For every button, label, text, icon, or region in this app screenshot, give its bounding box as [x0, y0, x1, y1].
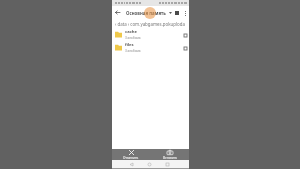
button[interactable]: Grid view [172, 8, 182, 18]
button[interactable]: cache [112, 28, 189, 41]
button[interactable]: Отменить [112, 149, 150, 160]
button[interactable]: Вставить [150, 149, 189, 160]
staticText: Основная память [126, 10, 166, 16]
button[interactable]: files [112, 41, 189, 54]
staticText: 3 альбома [125, 36, 141, 40]
button[interactable]: Back [127, 160, 136, 168]
button[interactable]: Select [182, 45, 188, 51]
staticText: Отменить [123, 156, 139, 160]
staticText: ‹ data ‹ com.yabgames.pokuploda [115, 21, 185, 27]
button[interactable]: Select [182, 32, 188, 38]
button[interactable]: Recents [163, 160, 172, 168]
staticText: Вставить [163, 156, 177, 160]
staticText: cache [125, 29, 138, 35]
staticText: 3 альбома [125, 49, 141, 53]
button[interactable]: Back [112, 7, 123, 18]
button[interactable]: More options [182, 8, 189, 18]
staticText: files [125, 42, 134, 48]
button[interactable]: Home [145, 160, 154, 168]
